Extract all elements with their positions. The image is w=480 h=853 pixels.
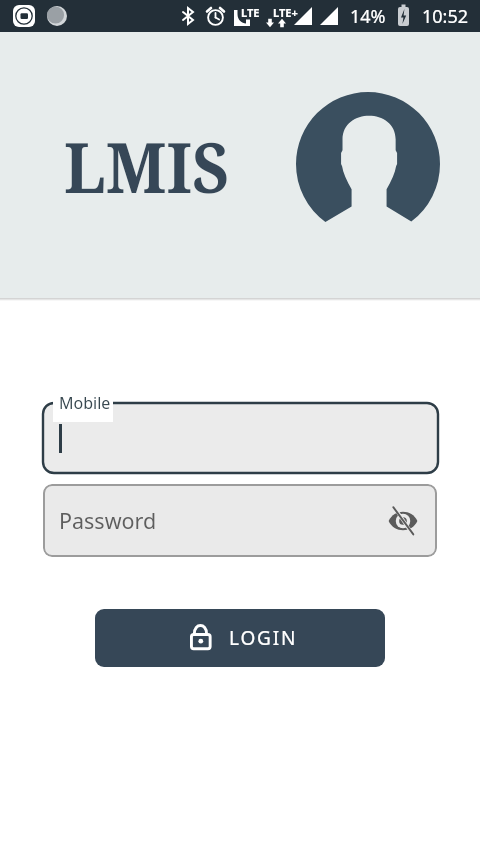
staticText: 14%: [350, 4, 386, 29]
staticText: LTE: [241, 5, 260, 20]
staticText: LOGIN: [229, 625, 298, 651]
button[interactable]: Show password: [383, 501, 423, 541]
button[interactable]: Password: [43, 484, 437, 557]
button[interactable]: LOGIN: [95, 609, 385, 667]
staticText: LTE+: [273, 5, 298, 20]
staticText: 10:52: [422, 4, 469, 29]
staticText: LMIS: [64, 119, 230, 213]
staticText: Mobile: [59, 392, 111, 414]
staticText: Password: [59, 506, 157, 535]
button[interactable]: [43, 403, 438, 473]
